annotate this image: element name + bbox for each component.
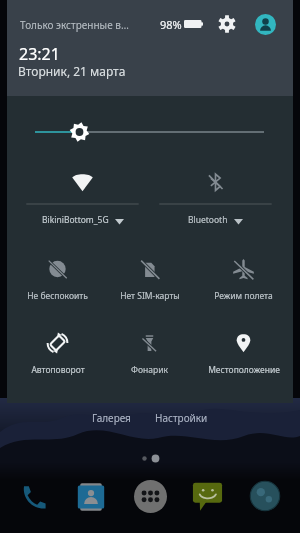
button[interactable]: BikiniBottom_5G: [16, 155, 149, 233]
button[interactable]: Фонарик: [103, 321, 196, 375]
button[interactable]: Автоповорот: [11, 321, 104, 375]
staticText: Вторник, 21 марта: [18, 63, 126, 79]
button[interactable]: Browser: [249, 480, 281, 512]
button[interactable]: Не беспокоить: [11, 247, 104, 301]
staticText: Только экстренные в…: [20, 18, 129, 32]
staticText: Режим полета: [214, 290, 273, 302]
staticText: Галерея: [92, 411, 131, 425]
staticText: 23:21: [19, 43, 60, 65]
button[interactable]: Вторник, 21 марта: [18, 63, 126, 79]
button[interactable]: User account: [255, 14, 276, 35]
button[interactable]: 23:21: [19, 43, 60, 65]
staticText: Bluetooth: [188, 214, 228, 226]
staticText: Нет SIM-карты: [120, 290, 180, 302]
staticText: 98%: [160, 17, 182, 32]
staticText: Не беспокоить: [27, 290, 88, 302]
button[interactable]: Messaging: [192, 481, 223, 512]
button[interactable]: Contacts: [76, 482, 106, 512]
button[interactable]: Brightness: [7, 112, 293, 152]
staticText: Фонарик: [131, 364, 168, 376]
staticText: BikiniBottom_5G: [42, 214, 109, 226]
button[interactable]: All apps: [134, 480, 167, 513]
button[interactable]: Режим полета: [197, 247, 290, 301]
button[interactable]: Местоположение: [197, 321, 290, 375]
button[interactable]: Settings: [218, 15, 236, 33]
staticText: Настройки: [155, 411, 208, 425]
button[interactable]: Phone: [18, 482, 48, 512]
button[interactable]: Галерея: [92, 411, 131, 425]
button[interactable]: Настройки: [155, 411, 208, 425]
button[interactable]: Bluetooth: [149, 155, 282, 233]
staticText: Местоположение: [208, 364, 280, 376]
staticText: Автоповорот: [31, 364, 85, 376]
button[interactable]: Нет SIM-карты: [103, 247, 196, 301]
